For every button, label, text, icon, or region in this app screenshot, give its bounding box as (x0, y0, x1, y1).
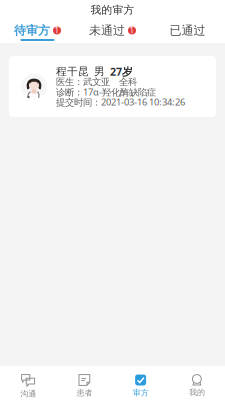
staticText: 1 (54, 25, 59, 36)
staticText: 男 (94, 65, 105, 78)
staticText: 患者 (76, 388, 92, 398)
button[interactable]: 患者 (56, 366, 112, 400)
button[interactable]: 沟通 (0, 366, 56, 400)
staticText: 程干昆 (56, 65, 89, 78)
button[interactable]: 我的 (169, 366, 225, 400)
staticText: 1 (129, 25, 134, 36)
staticText: 诊断：17α-羟化酶缺陷症 (56, 86, 156, 98)
button[interactable]: 待审方 (0, 24, 75, 41)
staticText: 医生：武文亚 全科 (56, 76, 137, 88)
staticText: 已通过 (169, 23, 205, 38)
button[interactable]: 未通过 (75, 24, 150, 41)
staticText: 27岁 (110, 64, 133, 79)
button[interactable]: 已通过 (150, 24, 225, 41)
staticText: 沟通 (20, 389, 36, 399)
button[interactable]: 程干昆 (9, 56, 216, 117)
staticText: 我的 (189, 387, 205, 397)
staticText: 待审方 (14, 23, 50, 38)
staticText: 未通过 (89, 23, 125, 38)
button[interactable]: 审方 (112, 366, 169, 400)
staticText: 审方 (133, 388, 149, 398)
staticText: 我的审方 (90, 3, 134, 16)
staticText: 提交时间：2021-03-16 10:34:26 (56, 96, 185, 108)
